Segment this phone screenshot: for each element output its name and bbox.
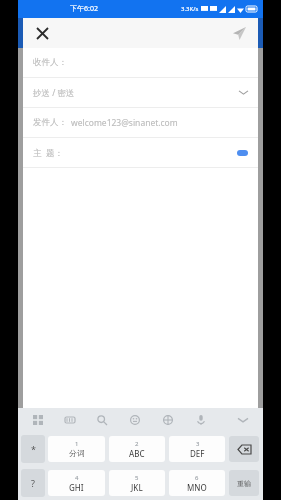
staticText: MNO [187,482,207,493]
button[interactable]: * [21,435,45,463]
button[interactable]: 收件人： [23,48,258,78]
staticText: 3 [196,440,200,448]
button[interactable]: 4 [48,470,105,496]
button[interactable]: 3 [169,436,225,462]
button[interactable]: Keyboard [62,412,78,428]
button[interactable]: Close [31,22,53,44]
staticText: 4 [75,474,79,482]
staticText: 主 题： [33,147,63,159]
staticText: 分词 [69,448,85,458]
button[interactable]: Backspace [229,436,259,462]
staticText: 抄送 / 密送 [33,87,75,99]
button[interactable]: 抄送 / 密送 [23,78,258,108]
button[interactable]: 5 [109,470,165,496]
button[interactable]: 发件人： [23,108,258,138]
staticText: ABC [129,448,145,459]
staticText: 5 [135,474,139,482]
staticText: JKL [131,482,143,493]
button[interactable]: Search [94,412,110,428]
button[interactable]: Layout [30,412,46,428]
staticText: ? [31,477,35,489]
staticText: 下午6:02 [70,4,98,14]
staticText: GHI [69,482,84,493]
button[interactable]: 1 [48,436,105,462]
button[interactable]: Voice [193,412,209,428]
button[interactable]: 6 [169,470,225,496]
button[interactable]: Send [228,22,250,44]
button[interactable]: ? [21,469,45,497]
staticText: 6 [195,474,199,482]
staticText: welcome123@sinanet.com [71,117,178,129]
staticText: 重输 [237,479,251,488]
staticText: 收件人： [33,57,67,68]
button[interactable]: Hide keyboard [235,412,251,428]
other: Toggle [237,150,248,156]
button[interactable]: Emoji [127,412,143,428]
staticText: * [31,443,36,455]
staticText: 3.3K/s [181,5,199,13]
button[interactable]: 主 题： [23,138,258,168]
button[interactable]: Translate [160,412,176,428]
staticText: DEF [190,448,205,459]
button[interactable]: Symbols [229,470,259,496]
button[interactable]: 2 [109,436,165,462]
staticText: 1 [75,440,79,448]
staticText: 2 [135,440,139,448]
staticText: 发件人： [33,117,67,128]
